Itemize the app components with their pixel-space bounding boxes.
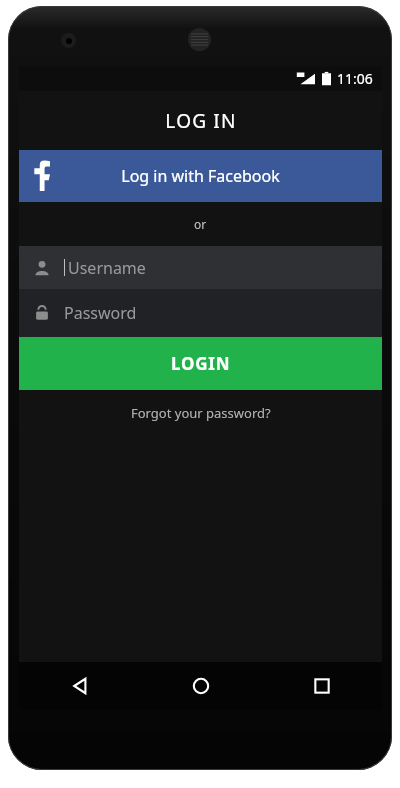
staticText: Forgot your password? — [131, 404, 271, 422]
staticText: Log in with Facebook — [121, 165, 280, 187]
staticText: LOG IN — [165, 108, 237, 134]
button[interactable]: Forgot your password? — [121, 400, 281, 426]
button[interactable]: Back — [19, 662, 140, 710]
button[interactable]: Home — [140, 662, 261, 710]
button[interactable]: LOGIN — [19, 337, 382, 390]
staticText: Username — [68, 257, 146, 279]
staticText: 11:06 — [337, 69, 373, 88]
button[interactable]: Log in with Facebook — [19, 150, 382, 202]
staticText: or — [194, 216, 207, 232]
button[interactable]: Password — [19, 289, 382, 337]
button[interactable]: Recent apps — [261, 662, 382, 710]
button[interactable]: Username — [19, 246, 382, 289]
staticText: LOGIN — [171, 352, 231, 375]
staticText: Password — [64, 302, 137, 324]
